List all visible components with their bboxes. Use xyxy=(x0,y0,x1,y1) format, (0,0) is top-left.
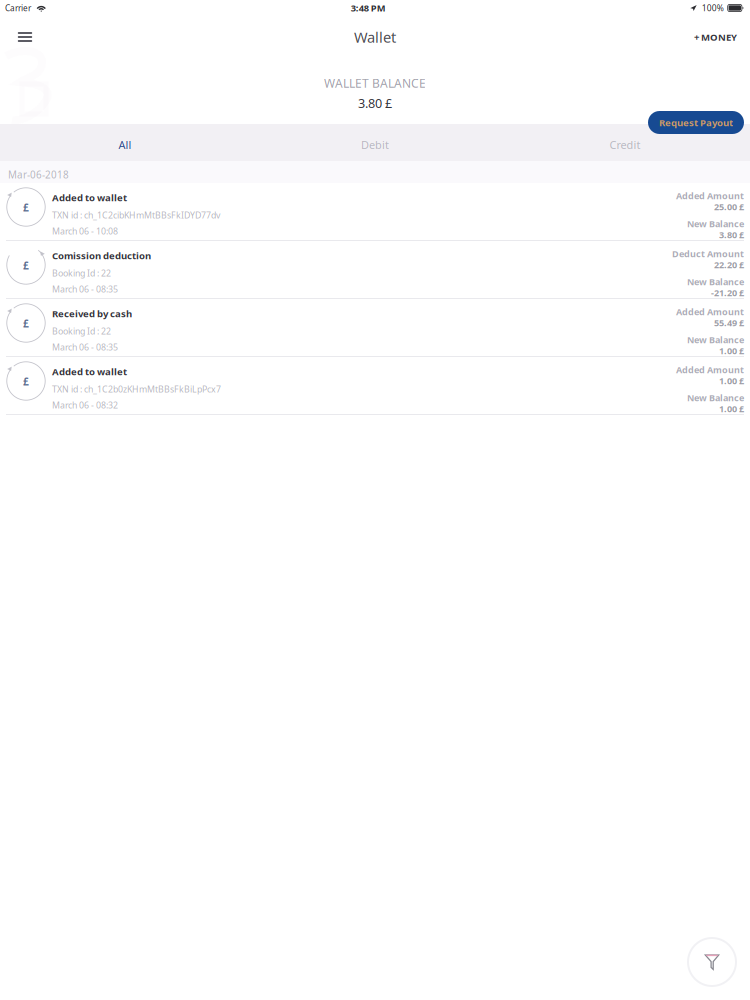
staticText: TXN id : ch_1C2b0zKHmMtBBsFkBiLpPcx7 xyxy=(52,383,221,395)
staticText: Added Amount xyxy=(676,190,744,202)
button[interactable]: Credit xyxy=(500,124,750,161)
button[interactable]: All xyxy=(0,124,250,161)
staticText: TXN id : ch_1C2cibKHmMtBBsFkIDYD77dv xyxy=(52,209,220,221)
staticText: £ xyxy=(23,375,29,388)
staticText: + MONEY xyxy=(694,30,737,44)
staticText: WALLET BALANCE xyxy=(324,75,426,91)
button[interactable]: Request Payout xyxy=(648,111,744,134)
staticText: Added Amount xyxy=(676,364,744,376)
staticText: Added to wallet xyxy=(52,365,127,378)
staticText: New Balance xyxy=(687,334,744,346)
button[interactable]: £ xyxy=(0,183,750,241)
staticText: 3.80 £ xyxy=(719,229,744,241)
staticText: Credit xyxy=(609,137,640,152)
staticText: 100% xyxy=(702,2,724,14)
staticText: Request Payout xyxy=(659,116,733,129)
button[interactable]: Menu xyxy=(8,20,42,54)
staticText: Added Amount xyxy=(676,306,744,318)
staticText: Booking Id : 22 xyxy=(52,325,111,337)
staticText: March 06 - 10:08 xyxy=(52,225,118,237)
button[interactable]: £ xyxy=(0,299,750,357)
staticText: Comission deduction xyxy=(52,249,151,262)
button[interactable]: Debit xyxy=(250,124,500,161)
staticText: 1.00 £ xyxy=(719,345,744,357)
button[interactable]: Filter xyxy=(688,938,736,986)
staticText: All xyxy=(118,137,131,152)
staticText: 22.20 £ xyxy=(714,259,744,271)
staticText: 3:48 PM xyxy=(351,2,386,14)
staticText: Received by cash xyxy=(52,307,132,320)
staticText: March 06 - 08:35 xyxy=(52,283,118,295)
button[interactable]: + MONEY xyxy=(684,20,737,54)
staticText: £ xyxy=(23,201,29,214)
staticText: 55.49 £ xyxy=(714,317,744,329)
staticText: Mar-06-2018 xyxy=(8,168,69,181)
staticText: New Balance xyxy=(687,392,744,404)
staticText: Debit xyxy=(361,137,389,152)
staticText: March 06 - 08:32 xyxy=(52,399,118,411)
staticText: £ xyxy=(23,317,29,330)
staticText: New Balance xyxy=(687,276,744,288)
staticText: £ xyxy=(23,259,29,272)
staticText: March 06 - 08:35 xyxy=(52,341,118,353)
staticText: New Balance xyxy=(687,218,744,230)
staticText: 1.00 £ xyxy=(719,375,744,387)
button[interactable]: £ xyxy=(0,357,750,415)
staticText: Deduct Amount xyxy=(672,248,744,260)
button[interactable]: £ xyxy=(0,241,750,299)
staticText: 1.00 £ xyxy=(719,403,744,415)
staticText: Booking Id : 22 xyxy=(52,267,111,279)
staticText: Wallet xyxy=(354,27,396,47)
staticText: -21.20 £ xyxy=(711,287,744,299)
staticText: 25.00 £ xyxy=(714,201,744,213)
staticText: Added to wallet xyxy=(52,191,127,204)
staticText: 3.80 £ xyxy=(358,94,392,112)
staticText: Carrier xyxy=(5,2,31,14)
